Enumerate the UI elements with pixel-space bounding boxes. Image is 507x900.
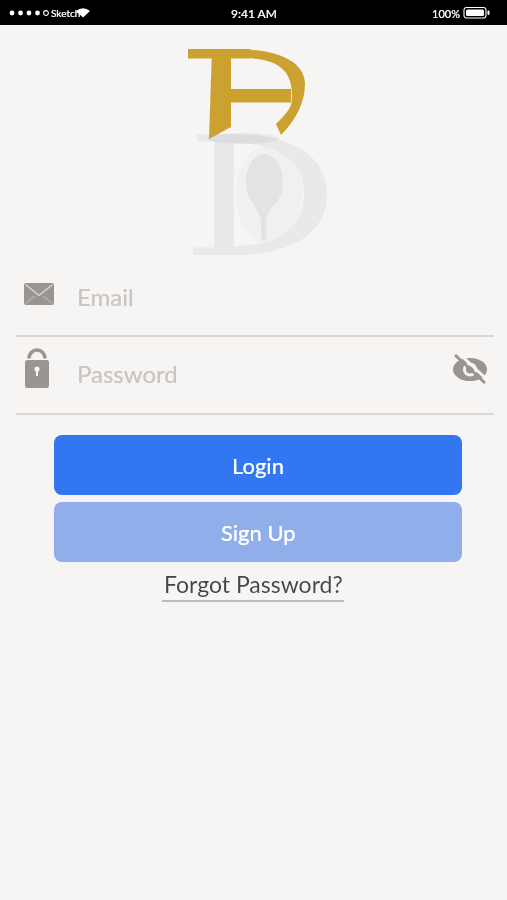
staticText: Forgot Password? (164, 570, 343, 598)
button[interactable]: Forgot Password? (164, 570, 343, 598)
staticText: Sign Up (221, 519, 296, 545)
staticText: Password (77, 359, 178, 388)
button[interactable]: Password (16, 352, 494, 414)
button[interactable]: Login (54, 435, 462, 495)
staticText: Sketch (51, 7, 81, 19)
button[interactable]: Sign Up (54, 502, 462, 562)
staticText: 100% (432, 7, 460, 20)
staticText: Email (77, 282, 134, 311)
staticText: Login (232, 452, 284, 478)
staticText: 9:41 AM (231, 6, 277, 20)
button[interactable]: Email (16, 276, 494, 336)
